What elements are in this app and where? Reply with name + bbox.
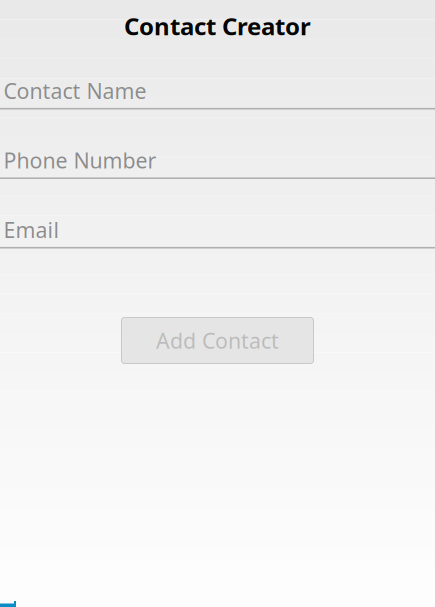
button[interactable]: Email <box>0 179 435 248</box>
button[interactable]: Add Contact <box>121 317 313 363</box>
button[interactable]: Contact Name <box>0 40 435 109</box>
staticText: Phone Number <box>3 146 156 174</box>
button[interactable]: Phone Number <box>0 109 435 179</box>
staticText: Email <box>3 216 59 244</box>
staticText: Contact Name <box>3 77 146 105</box>
staticText: Add Contact <box>156 326 279 355</box>
staticText: Contact Creator <box>124 10 311 42</box>
